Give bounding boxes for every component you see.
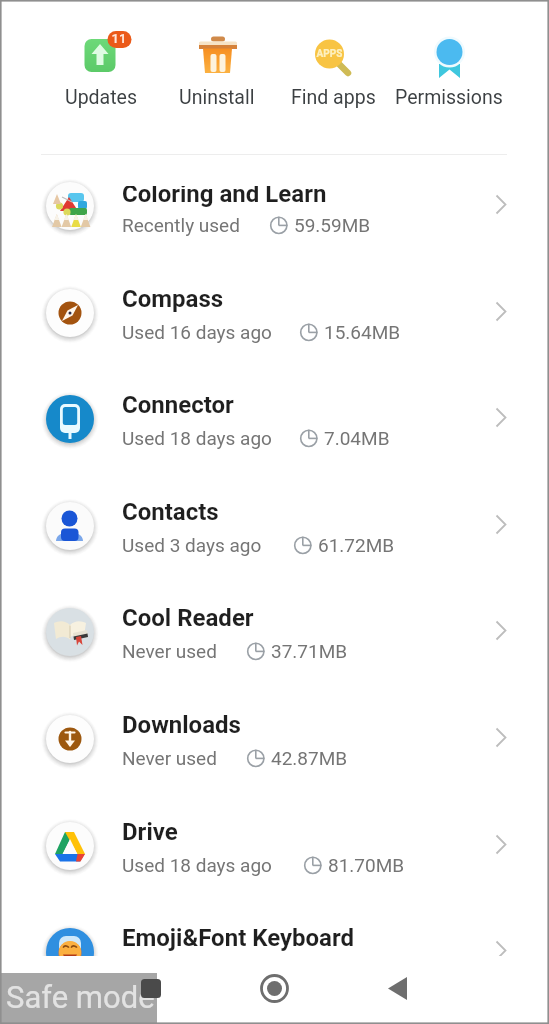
staticText: Contacts (122, 498, 219, 526)
staticText: Never used (122, 640, 217, 662)
staticText: 11 (107, 31, 131, 46)
staticText: Find apps (291, 86, 376, 109)
staticText: Never used (122, 747, 217, 769)
staticText: Compass (122, 285, 224, 313)
button[interactable]: Emoji&Font Keyboard (0, 898, 549, 956)
button[interactable]: Contacts (0, 472, 549, 578)
staticText: 59.59MB (294, 214, 371, 236)
staticText: Used 18 days ago (122, 854, 272, 876)
button[interactable]: Cool Reader (0, 578, 549, 684)
staticText: 42.87MB (271, 747, 348, 769)
button[interactable]: Connector (0, 365, 549, 471)
button[interactable]: Recents (127, 965, 175, 1013)
staticText: Cool Reader (122, 604, 254, 632)
staticText: Used 3 days ago (122, 534, 262, 556)
staticText: Coloring and Learn (122, 186, 327, 208)
staticText: Safe mode (6, 979, 155, 1015)
staticText: Connector (122, 391, 234, 419)
button[interactable]: Compass (0, 259, 549, 365)
staticText: Uninstall (179, 86, 255, 109)
staticText: 7.04MB (324, 427, 390, 449)
staticText: Permissions (395, 86, 503, 109)
button[interactable]: Permissions (391, 30, 507, 109)
staticText: Emoji&Font Keyboard (122, 924, 355, 952)
staticText: 15.64MB (324, 321, 401, 343)
button[interactable]: APPS (275, 30, 391, 109)
staticText: 81.70MB (328, 854, 405, 876)
button[interactable]: Drive (0, 792, 549, 898)
staticText: Used 18 days ago (122, 427, 272, 449)
button[interactable]: Uninstall (159, 30, 275, 109)
staticText: 37.71MB (271, 640, 348, 662)
staticText: Downloads (122, 711, 241, 739)
button[interactable]: Downloads (0, 685, 549, 791)
staticText: Drive (122, 818, 178, 846)
staticText: APPS (314, 48, 345, 60)
staticText: Updates (65, 86, 137, 109)
staticText: Used 16 days ago (122, 321, 272, 343)
button[interactable]: 11 (43, 30, 159, 109)
button[interactable]: Back (374, 965, 422, 1013)
staticText: Recently used (122, 214, 240, 236)
staticText: 61.72MB (318, 534, 395, 556)
button[interactable]: Coloring and Learn (0, 156, 549, 258)
button[interactable]: Home (250, 965, 298, 1013)
